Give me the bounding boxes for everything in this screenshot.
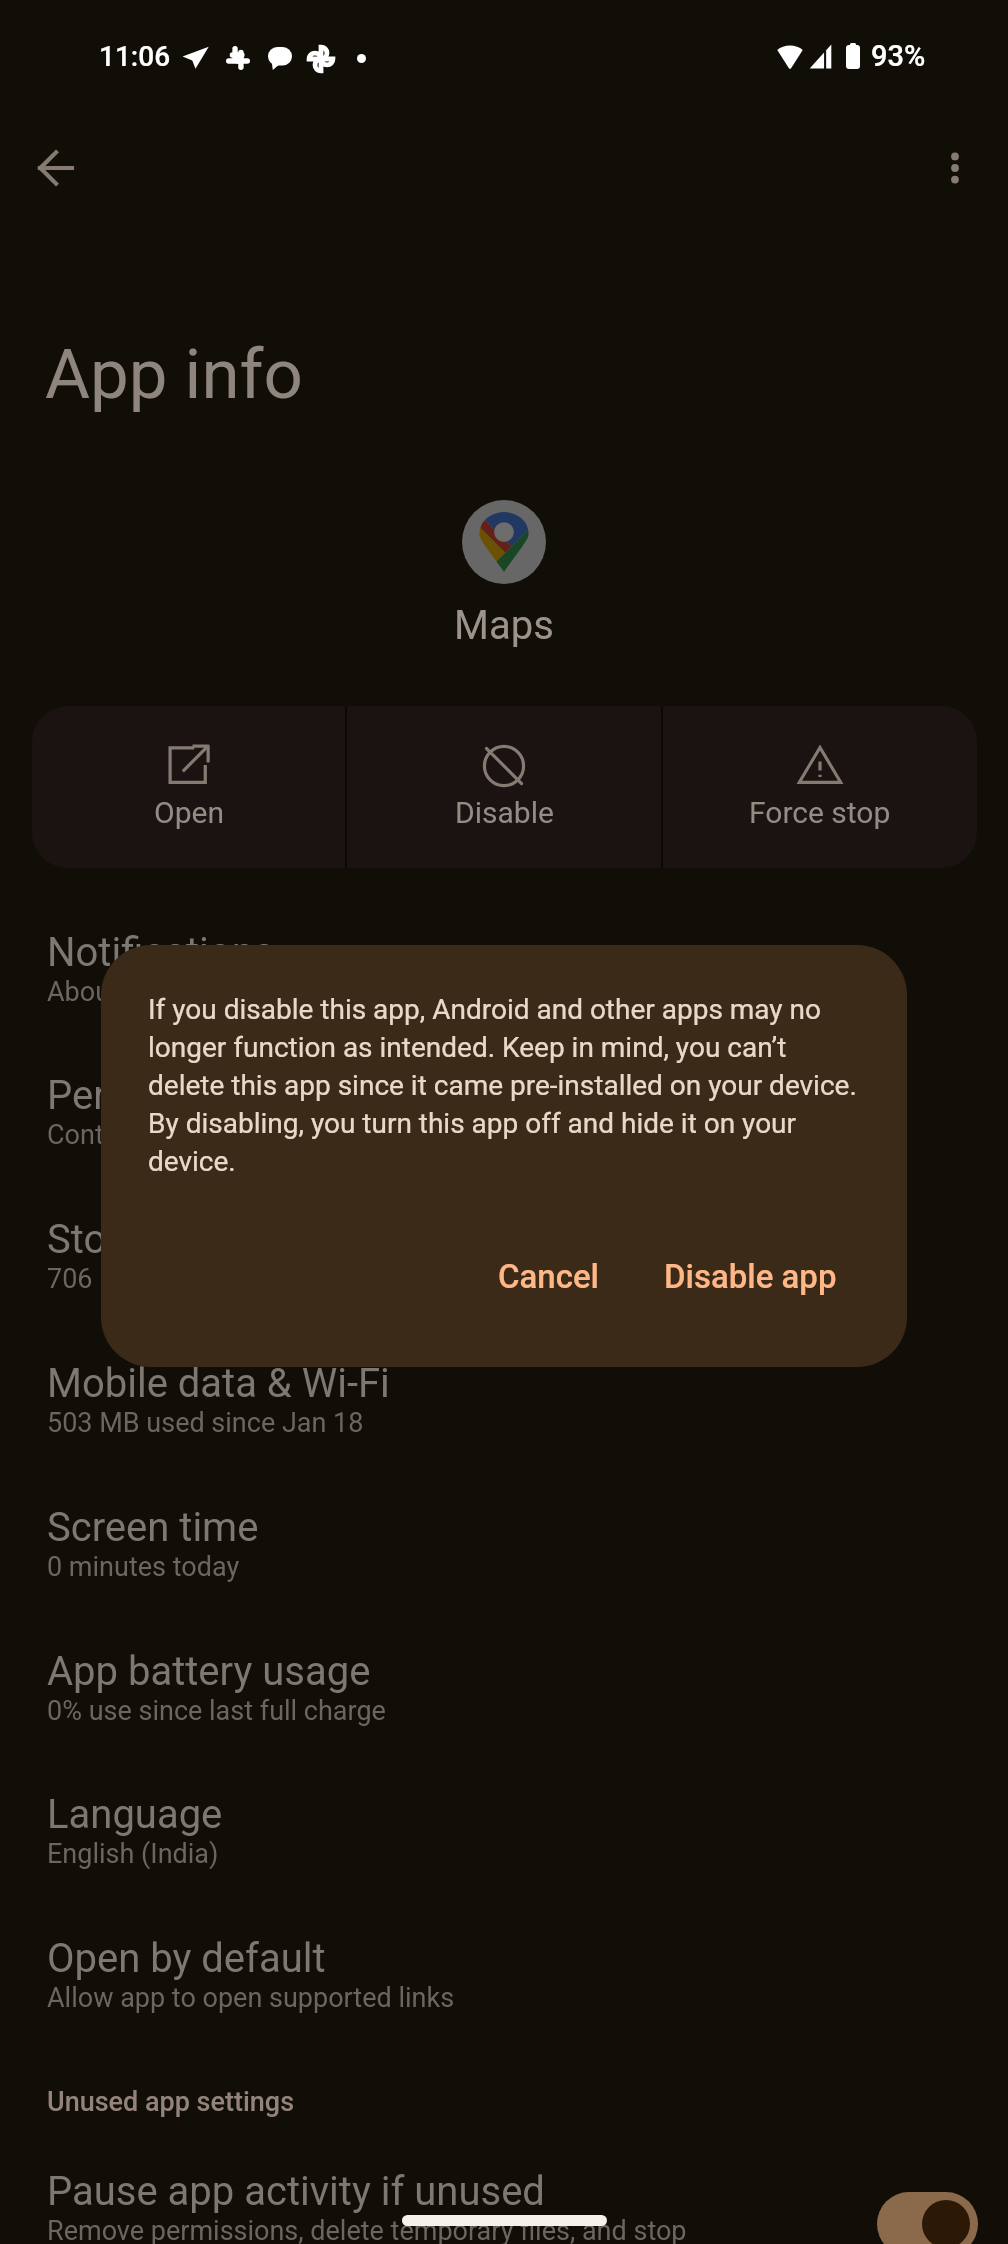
button[interactable]: More options: [920, 133, 990, 203]
staticText: About: [47, 976, 119, 1008]
staticText: Storage & cache: [47, 1216, 337, 1263]
button[interactable]: Open by default: [0, 1935, 1008, 2079]
staticText: Unused app settings: [47, 2086, 295, 2118]
button[interactable]: Open: [32, 706, 345, 868]
staticText: Allow app to open supported links: [47, 1982, 455, 2014]
staticText: 93%: [871, 39, 926, 73]
staticText: 0% use since last full charge: [47, 1695, 386, 1727]
staticText: 706 kB used: [47, 1263, 195, 1295]
button[interactable]: Pause app activity if unused: [0, 2168, 1008, 2244]
button[interactable]: Back: [21, 133, 91, 203]
staticText: Disable: [455, 795, 554, 830]
staticText: Screen time: [47, 1504, 259, 1551]
staticText: 11:06: [99, 40, 171, 73]
button[interactable]: App battery usage: [0, 1648, 1008, 1792]
staticText: Pause app activity if unused: [47, 2168, 545, 2215]
staticText: English (India): [47, 1838, 219, 1870]
button[interactable]: Screen time: [0, 1504, 1008, 1648]
button[interactable]: Language: [0, 1791, 1008, 1935]
staticText: Force stop: [749, 795, 891, 830]
button[interactable]: Storage & cache: [0, 1216, 1008, 1360]
button[interactable]: Notifications: [0, 929, 1008, 1073]
staticText: If you disable this app, Android and oth…: [148, 993, 866, 1178]
staticText: Mobile data & Wi-Fi: [47, 1360, 390, 1407]
staticText: Notifications: [47, 929, 275, 976]
staticText: 503 MB used since Jan 18: [47, 1407, 364, 1439]
staticText: Remove permissions, delete temporary fil…: [47, 2215, 687, 2244]
staticText: Open: [154, 795, 224, 830]
staticText: Maps: [0, 602, 1008, 649]
button[interactable]: Force stop: [663, 706, 977, 868]
staticText: Contacts: [47, 1119, 156, 1151]
staticText: Permissions: [47, 1072, 269, 1119]
button[interactable]: Cancel: [476, 1241, 622, 1312]
staticText: Disable app: [664, 1257, 837, 1296]
staticText: App battery usage: [47, 1648, 371, 1695]
button[interactable]: Disable app: [642, 1241, 859, 1312]
staticText: Language: [47, 1791, 223, 1838]
staticText: Cancel: [498, 1257, 600, 1296]
staticText: App info: [45, 334, 303, 415]
staticText: 0 minutes today: [47, 1551, 240, 1583]
button[interactable]: Mobile data & Wi-Fi: [0, 1360, 1008, 1504]
button[interactable]: Pause app activity toggle: [877, 2192, 978, 2244]
button[interactable]: Disable: [347, 706, 661, 868]
button[interactable]: Permissions: [0, 1072, 1008, 1216]
staticText: Open by default: [47, 1935, 326, 1982]
